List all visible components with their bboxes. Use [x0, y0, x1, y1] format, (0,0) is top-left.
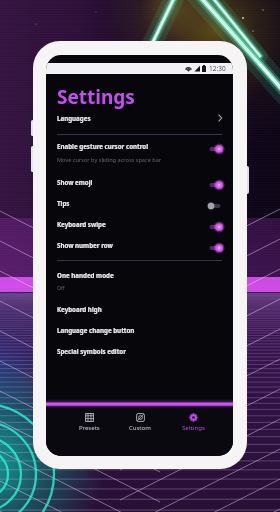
staticText: Keyboard high: [57, 305, 222, 313]
staticText: Custom: [129, 424, 151, 432]
button[interactable]: Presets tab: [67, 408, 111, 438]
other: Open: [218, 114, 222, 122]
button[interactable]: Special symbols editor: [46, 342, 233, 360]
staticText: Language change button: [57, 326, 222, 334]
staticText: Keyboard swipe: [57, 220, 208, 228]
button[interactable]: Keyboard high: [46, 300, 233, 318]
button[interactable]: On: [208, 144, 222, 154]
staticText: Presets: [79, 424, 100, 432]
button[interactable]: Keyboard swipe: [46, 215, 233, 233]
staticText: 12:30: [209, 64, 226, 73]
button[interactable]: Show number row: [46, 236, 233, 254]
button[interactable]: Custom tab: [118, 408, 162, 438]
button[interactable]: On: [208, 180, 222, 190]
staticText: Special symbols editor: [57, 347, 222, 355]
button[interactable]: Language change button: [46, 321, 233, 339]
staticText: One handed mode: [57, 271, 222, 279]
button[interactable]: Tips: [46, 194, 233, 212]
staticText: Settings: [57, 84, 135, 110]
staticText: Languages: [57, 114, 218, 122]
button[interactable]: Settings tab: [171, 408, 215, 438]
button[interactable]: Off: [208, 201, 222, 211]
staticText: Enable gesture cursor control: [57, 142, 208, 150]
staticText: Settings: [182, 424, 205, 432]
button[interactable]: Enable gesture cursor control: [46, 137, 233, 155]
button[interactable]: On: [208, 222, 222, 232]
staticText: Tips: [57, 199, 208, 207]
button[interactable]: Languages: [46, 109, 233, 127]
staticText: Off: [57, 284, 65, 291]
staticText: Move cursor by sliding across space bar: [57, 156, 162, 164]
button[interactable]: Show emoji: [46, 173, 233, 191]
staticText: Show emoji: [57, 178, 208, 186]
button[interactable]: On: [208, 243, 222, 253]
button[interactable]: One handed mode: [46, 266, 233, 284]
staticText: Show number row: [57, 241, 208, 249]
